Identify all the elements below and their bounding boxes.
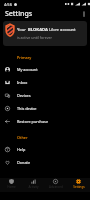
staticText: Devices [17, 93, 31, 98]
staticText: Primary [17, 55, 32, 60]
staticText: Settings [5, 9, 33, 19]
button[interactable]: Restore purchase [0, 115, 90, 128]
staticText: Inbox [17, 80, 28, 85]
button[interactable]: Your [3, 21, 87, 46]
staticText: Settings [73, 185, 85, 189]
button[interactable]: Inbox [0, 76, 90, 89]
staticText: is active until forever [17, 35, 52, 40]
staticText: Advanced [49, 185, 63, 189]
staticText: Home [7, 185, 16, 189]
button[interactable]: Activity [22, 178, 44, 189]
staticText: Other [17, 135, 28, 140]
staticText: Activity [28, 185, 39, 189]
staticText: This device [17, 106, 37, 111]
staticText: Libre account [48, 27, 76, 33]
button[interactable]: Advanced [44, 178, 67, 189]
staticText: BLOKADA [28, 27, 48, 33]
staticText: Restore purchase [17, 119, 49, 124]
staticText: 4:56 [4, 2, 12, 7]
button[interactable]: More options [78, 8, 90, 20]
button[interactable]: Home [0, 178, 22, 189]
button[interactable]: Settings [67, 178, 90, 189]
button[interactable]: My account [0, 63, 90, 76]
button[interactable]: This device [0, 102, 90, 115]
button[interactable]: Help [0, 143, 90, 156]
button[interactable]: Devices [0, 89, 90, 102]
staticText: Your [17, 27, 28, 33]
staticText: Donate [17, 160, 31, 165]
button[interactable]: Donate [0, 156, 90, 169]
staticText: My account [17, 67, 38, 72]
staticText: Help [17, 147, 26, 152]
